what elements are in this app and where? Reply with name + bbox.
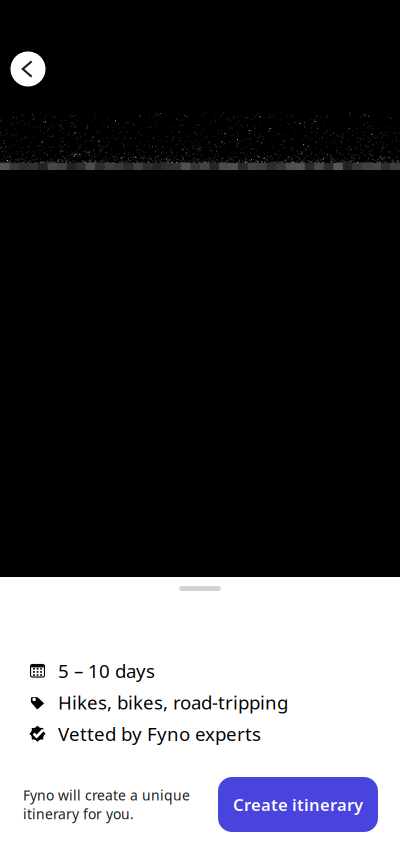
- staticText: Vetted by Fyno experts: [58, 721, 261, 746]
- button[interactable]: Create itinerary: [218, 777, 378, 832]
- button[interactable]: Back: [6, 47, 50, 91]
- staticText: Create itinerary: [233, 793, 363, 816]
- staticText: Hikes, bikes, road-tripping: [58, 689, 288, 715]
- staticText: Fyno will create a unique itinerary for …: [23, 786, 190, 823]
- staticText: 5 – 10 days: [58, 658, 155, 683]
